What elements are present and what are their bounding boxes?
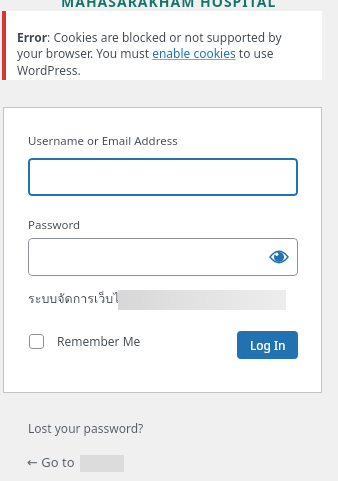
staticText: Username or Email Address bbox=[28, 133, 178, 149]
button[interactable] bbox=[28, 238, 298, 276]
staticText: ระบบจัดการเว็บไซต์ bbox=[28, 289, 137, 309]
staticText: Remember Me bbox=[57, 333, 141, 349]
staticText: Log In bbox=[250, 337, 286, 353]
button[interactable] bbox=[270, 251, 288, 263]
staticText: Error: Cookies are blocked or not suppor… bbox=[17, 29, 317, 78]
button[interactable]: Lost your password? bbox=[28, 420, 144, 436]
button[interactable]: Remember Me bbox=[29, 333, 141, 349]
button[interactable]: Log In bbox=[237, 331, 298, 359]
staticText: Password bbox=[28, 217, 81, 233]
staticText: MAHASARAKHAM HOSPITAL bbox=[61, 0, 277, 11]
button[interactable] bbox=[28, 158, 298, 196]
button[interactable]: ← Go to bbox=[27, 453, 75, 471]
